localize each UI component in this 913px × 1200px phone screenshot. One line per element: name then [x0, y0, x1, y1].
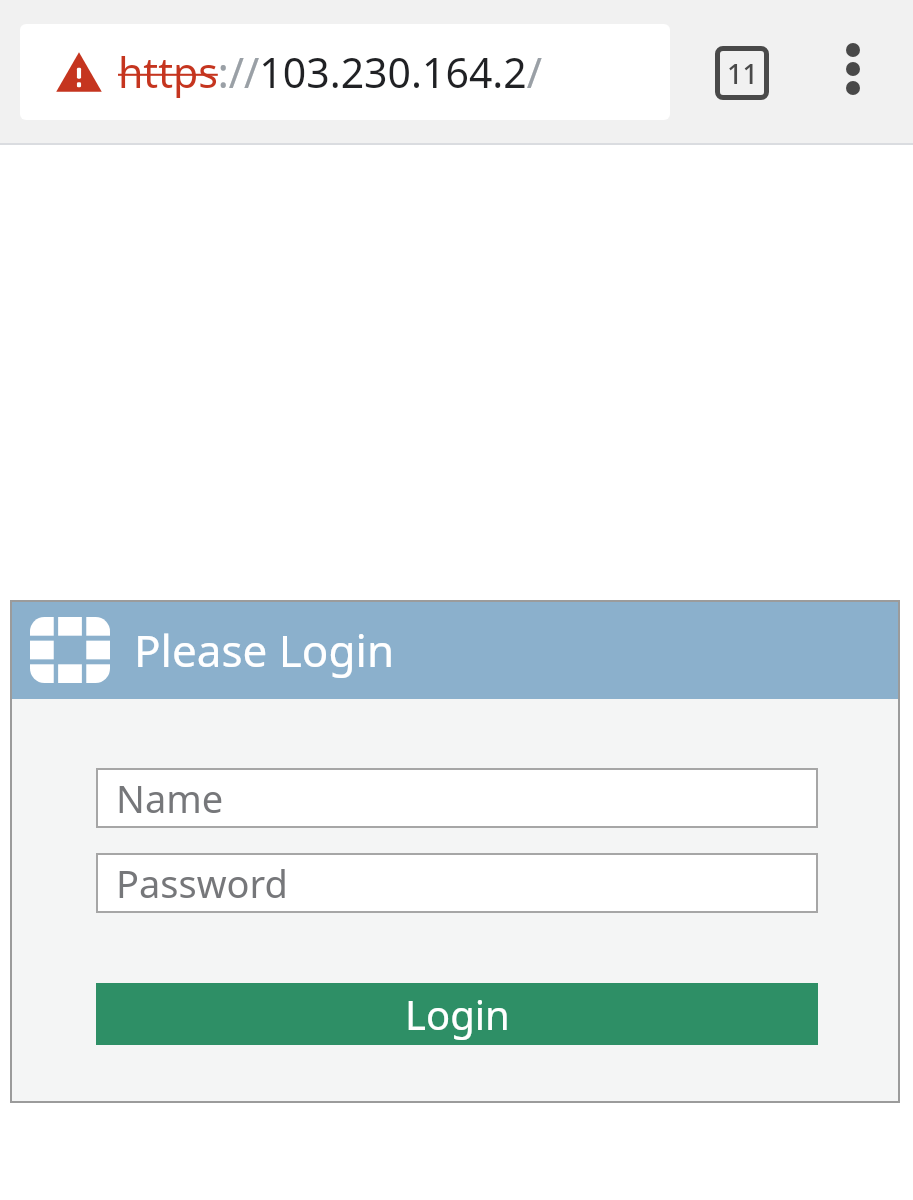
staticText: Password [116, 857, 288, 909]
button[interactable]: More options [820, 36, 886, 102]
button[interactable]: Login [96, 983, 818, 1045]
staticText: https://103.230.164.2/remote/login [118, 44, 670, 100]
button[interactable]: Search or type URL [20, 24, 670, 120]
button[interactable]: Password [96, 853, 818, 913]
button[interactable]: Name [96, 768, 818, 828]
button[interactable]: Open tabs, 11 [710, 41, 774, 105]
staticText: 11 [727, 55, 758, 92]
staticText: Login [405, 987, 510, 1041]
staticText: Please Login [134, 620, 395, 680]
staticText: Name [116, 772, 224, 824]
